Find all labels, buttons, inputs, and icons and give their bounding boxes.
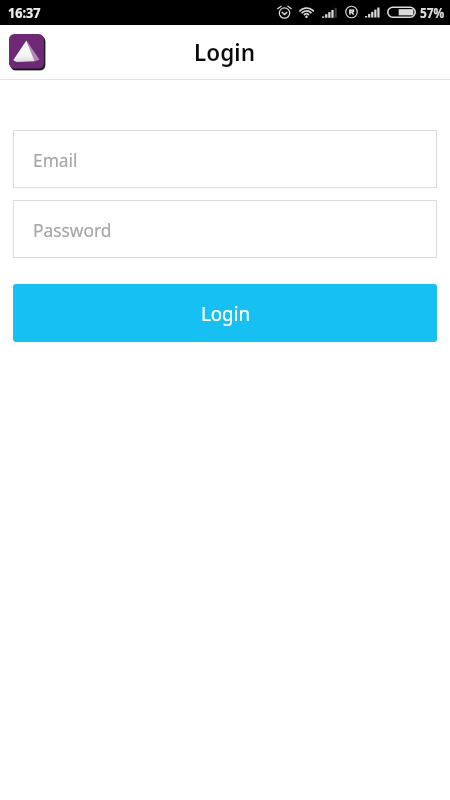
staticText: 57% (420, 4, 445, 22)
button[interactable]: Login (13, 284, 437, 342)
staticText: Login (194, 35, 256, 68)
button[interactable]: Email (13, 130, 437, 188)
staticText: Email (33, 147, 78, 172)
button[interactable]: Password (13, 200, 437, 258)
staticText: Password (33, 217, 112, 242)
button[interactable]: App logo (9, 34, 46, 71)
staticText: Login (201, 300, 250, 327)
staticText: 16:37 (8, 4, 41, 22)
